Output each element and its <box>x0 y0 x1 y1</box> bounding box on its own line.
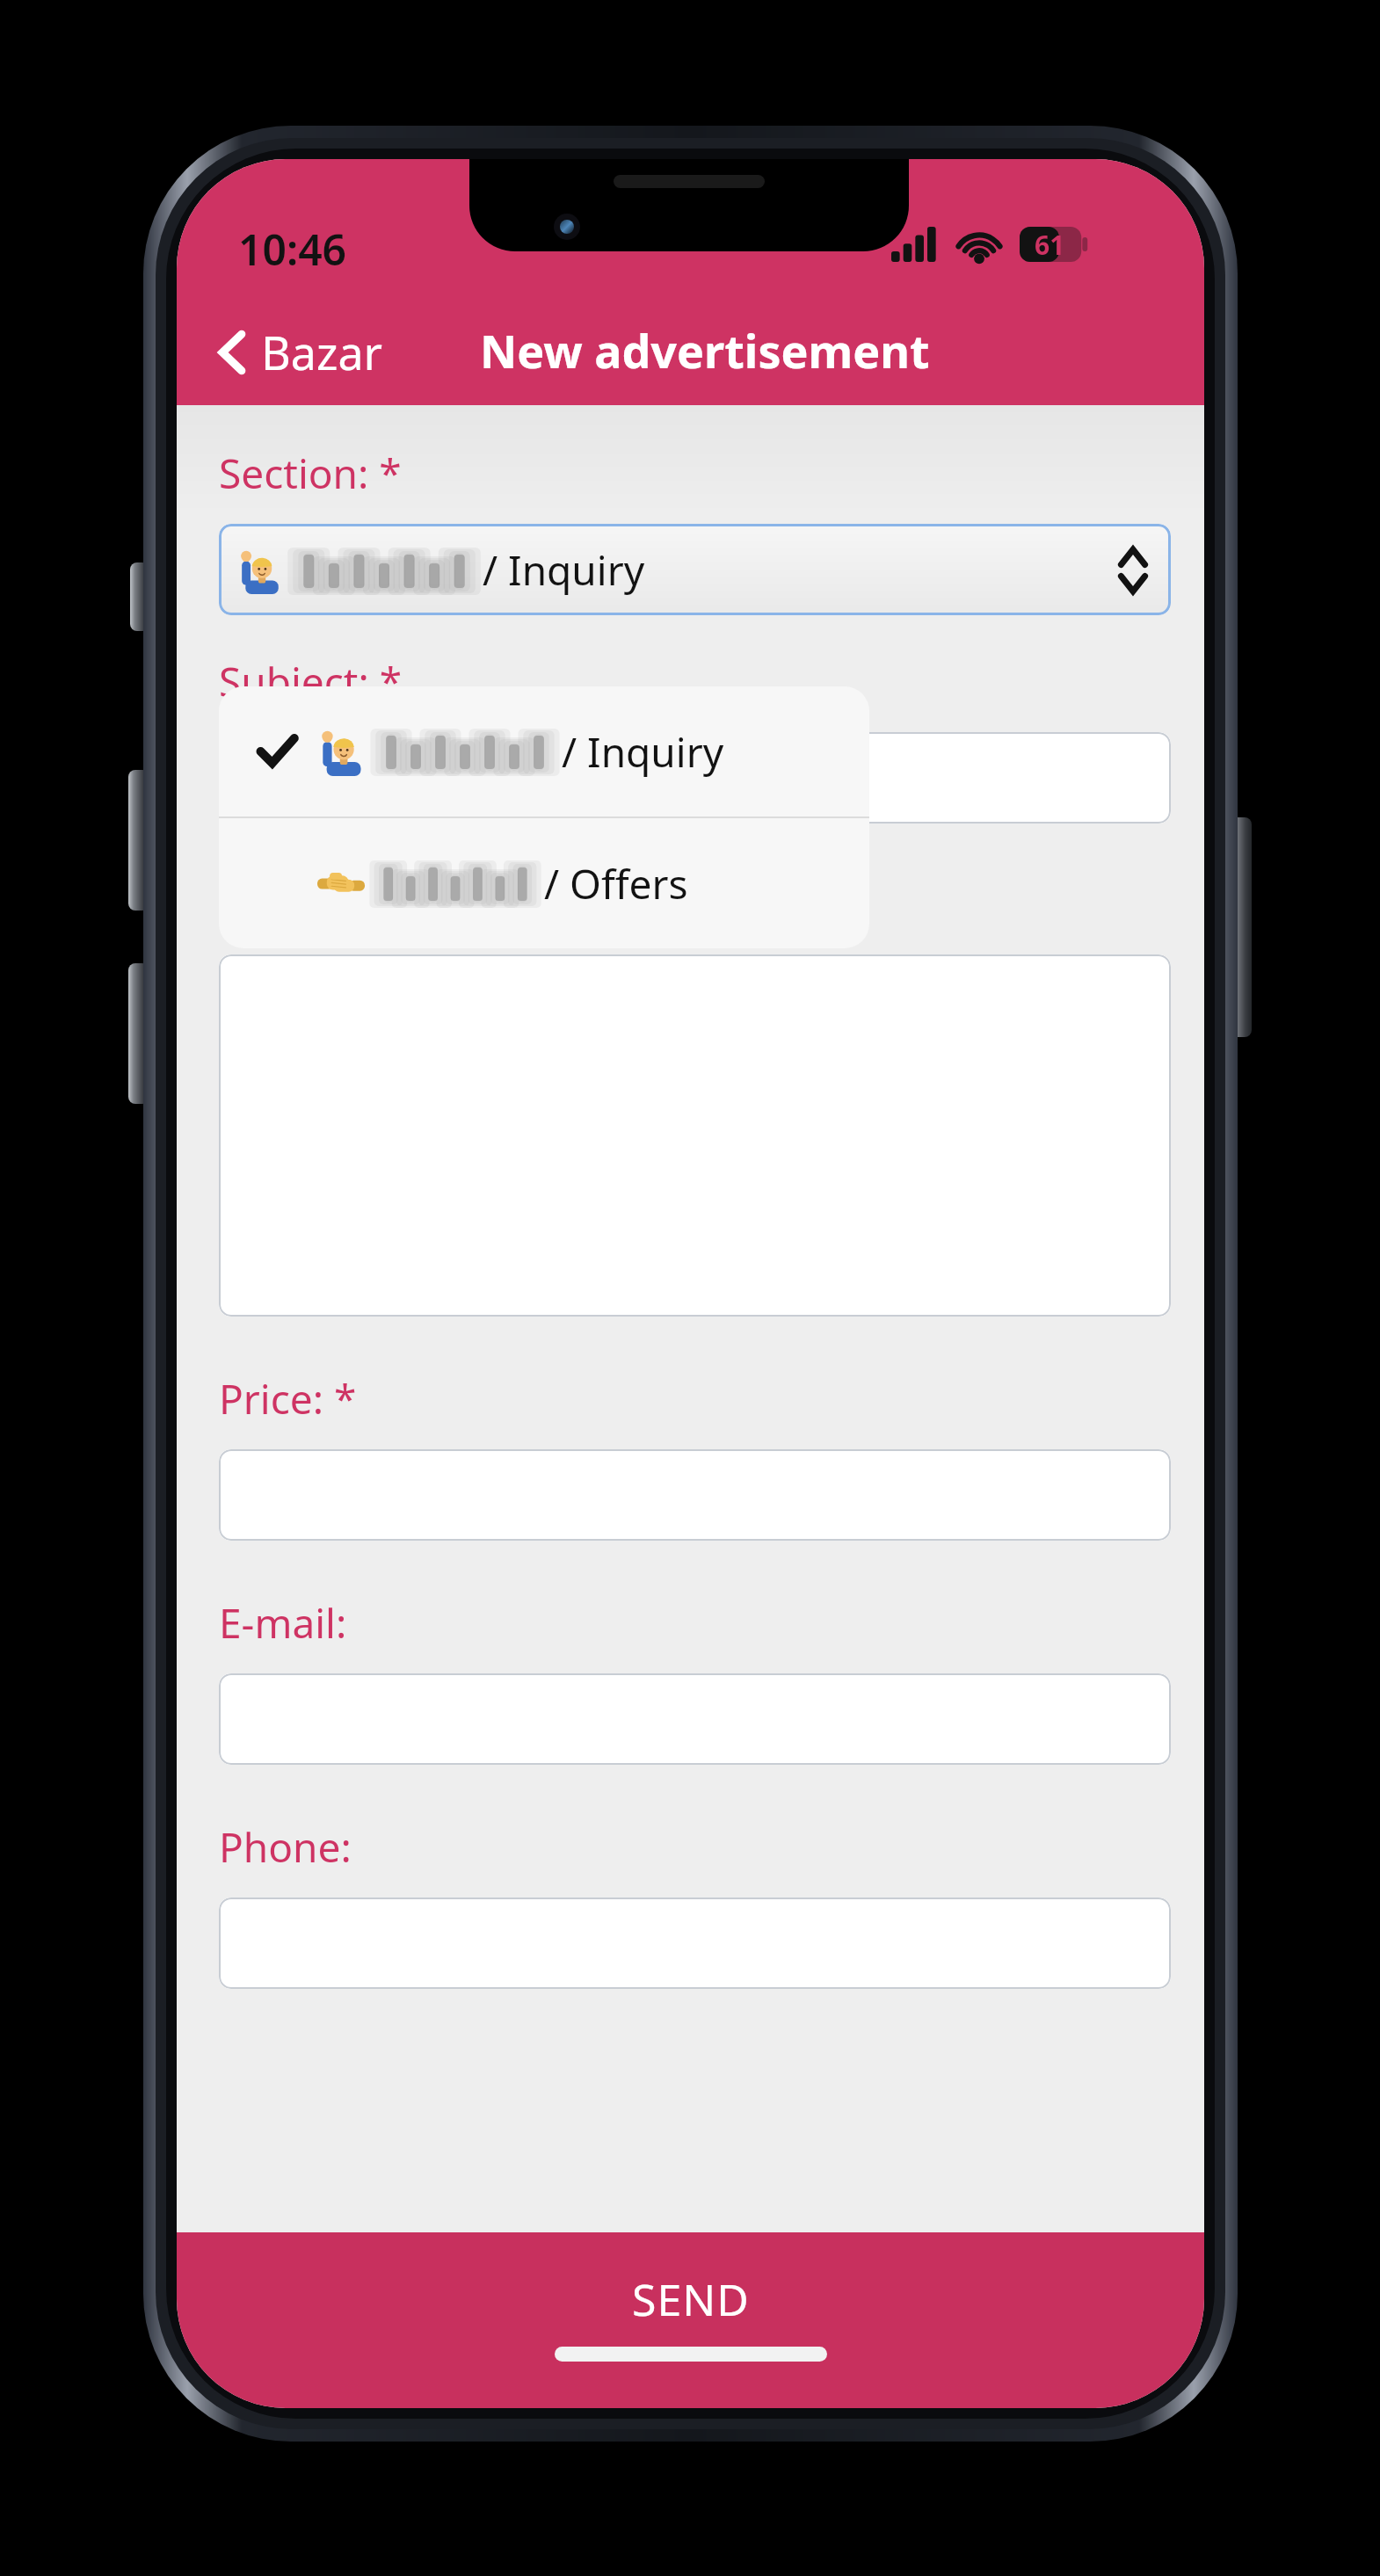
staticText: Phone: <box>219 1819 352 1875</box>
staticText: 61 <box>1035 227 1065 262</box>
staticText: / Offers <box>534 856 688 911</box>
staticText: Bazar <box>261 321 383 383</box>
button[interactable] <box>219 1673 1171 1765</box>
staticText: / Inquiry <box>472 542 645 598</box>
button[interactable] <box>219 732 1171 824</box>
button[interactable]: / Inquiry <box>219 524 1171 615</box>
button[interactable] <box>219 1449 1171 1541</box>
button[interactable]: / Inquiry <box>219 686 869 816</box>
staticText: Subject: * <box>219 654 403 709</box>
staticText: Section: * <box>219 446 402 501</box>
staticText: E-mail: <box>219 1595 347 1651</box>
button[interactable] <box>219 954 1171 1317</box>
staticText: SEND <box>632 2269 750 2329</box>
button[interactable]: / Offers <box>219 818 869 948</box>
button[interactable] <box>219 1898 1171 1989</box>
staticText: New advertisement <box>480 319 930 381</box>
staticText: Price: * <box>219 1371 357 1426</box>
staticText: / Inquiry <box>551 724 724 780</box>
staticText: 10:46 <box>238 221 347 278</box>
button[interactable]: SEND <box>177 2232 1204 2408</box>
button[interactable]: Bazar <box>207 314 394 390</box>
staticText: Text: * <box>219 876 340 932</box>
